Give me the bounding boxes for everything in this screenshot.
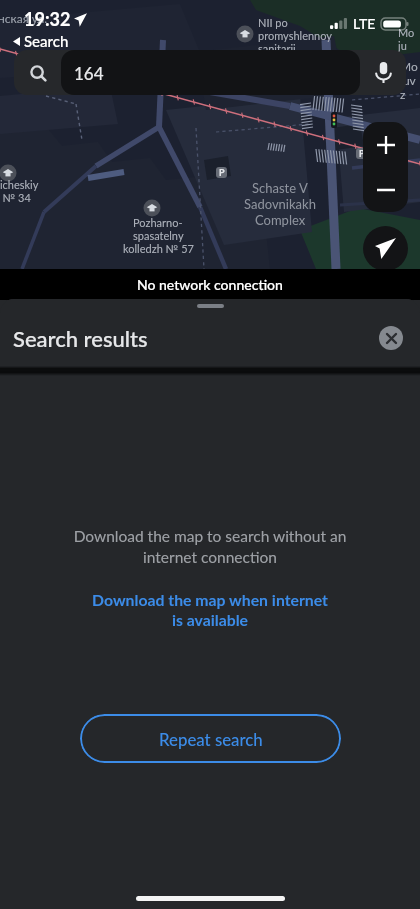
staticText: 19:32 [24, 8, 71, 30]
staticText: Search [24, 32, 69, 50]
staticText: NII po [258, 16, 288, 29]
staticText: LTE [353, 15, 376, 32]
staticText: Download the map when internet is availa… [90, 590, 330, 630]
staticText: Sadovnikakh [244, 196, 316, 212]
staticText: z [400, 87, 406, 101]
staticText: P [219, 167, 225, 178]
button[interactable]: Zoom in [363, 122, 408, 167]
staticText: Mo [400, 59, 418, 73]
staticText: Schaste V [252, 180, 308, 196]
button[interactable]: Repeat search [80, 714, 341, 763]
staticText: kh № 34 [0, 191, 31, 204]
staticText: 164 [74, 63, 104, 83]
staticText: Search results [13, 325, 148, 351]
staticText: Pozharno- [133, 216, 183, 229]
button[interactable]: Close [379, 326, 403, 350]
staticText: kolledzh № 57 [123, 242, 194, 255]
button[interactable]: Download the map when internet is availa… [90, 590, 330, 630]
button[interactable]: Search [14, 50, 61, 95]
staticText: нская ул. [0, 11, 48, 25]
button[interactable]: My location [363, 226, 408, 271]
staticText: promyshlennoy [258, 29, 332, 42]
staticText: spasatelny [133, 229, 184, 242]
staticText: Download the map to search without an in… [60, 527, 360, 567]
staticText: No network connection [137, 276, 283, 293]
staticText: Mo [398, 26, 415, 39]
staticText: ju [398, 39, 407, 52]
staticText: sanitarii [258, 42, 296, 55]
staticText: P [359, 148, 365, 159]
staticText: juv [400, 73, 416, 87]
button[interactable]: Voice search [360, 50, 406, 95]
button[interactable]: 164 [61, 50, 360, 95]
staticText: Repeat search [159, 729, 263, 749]
button[interactable]: Zoom out [363, 167, 408, 212]
staticText: Complex [255, 212, 306, 228]
staticText: ogicheskiy [0, 178, 39, 191]
